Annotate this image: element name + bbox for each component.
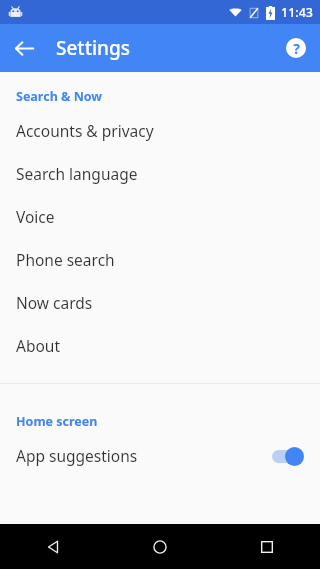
button[interactable]: Back: [4, 28, 44, 68]
button[interactable]: Phone search: [0, 238, 320, 281]
button[interactable]: Now cards: [0, 281, 320, 324]
staticText: Now cards: [16, 292, 93, 313]
button[interactable]: Voice: [0, 195, 320, 238]
staticText: Search language: [16, 163, 138, 184]
staticText: About: [16, 335, 60, 356]
button[interactable]: Accounts & privacy: [0, 109, 320, 152]
staticText: Home screen: [16, 413, 98, 430]
staticText: Accounts & privacy: [16, 120, 154, 141]
staticText: Search & Now: [16, 88, 103, 105]
button[interactable]: Help: [278, 30, 314, 66]
staticText: App suggestions: [16, 445, 270, 466]
button[interactable]: Back: [0, 524, 106, 569]
staticText: ?: [293, 39, 300, 58]
button[interactable]: Home: [106, 524, 213, 569]
staticText: Settings: [56, 35, 130, 61]
button[interactable]: Search language: [0, 152, 320, 195]
staticText: 11:43: [281, 4, 314, 21]
button[interactable]: About: [0, 324, 320, 367]
staticText: Voice: [16, 206, 55, 227]
button[interactable]: App suggestions: [0, 434, 320, 477]
button[interactable]: Recent apps: [213, 524, 320, 569]
staticText: Phone search: [16, 249, 115, 270]
